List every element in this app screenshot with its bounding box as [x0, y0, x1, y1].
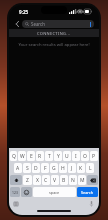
- button[interactable]: B: [60, 175, 68, 185]
- staticText: J: [71, 165, 73, 172]
- staticText: C: [44, 177, 48, 184]
- staticText: S: [26, 165, 29, 172]
- staticText: O: [83, 153, 87, 160]
- staticText: Q: [12, 153, 16, 160]
- button[interactable]: G: [50, 163, 58, 173]
- staticText: F: [44, 165, 47, 172]
- button[interactable]: space: [33, 187, 76, 197]
- button[interactable]: E: [27, 151, 35, 161]
- button[interactable]: Q: [10, 151, 17, 161]
- staticText: M: [80, 177, 85, 184]
- staticText: L: [89, 165, 92, 172]
- staticText: U: [65, 153, 69, 160]
- button[interactable]: Search: [77, 187, 98, 197]
- button[interactable]: J: [68, 163, 76, 173]
- staticText: W: [20, 153, 25, 160]
- button[interactable]: S: [23, 163, 31, 173]
- button[interactable]: Change keyboard language: [12, 200, 19, 207]
- staticText: I: [75, 153, 77, 160]
- staticText: Y: [57, 153, 60, 160]
- staticText: H: [61, 165, 65, 172]
- button[interactable]: Shift: [10, 175, 22, 185]
- staticText: Search: [81, 190, 94, 195]
- staticText: B: [62, 177, 66, 184]
- staticText: CONNECTING...: [37, 31, 71, 36]
- button[interactable]: Back: [12, 19, 22, 29]
- staticText: Search: [31, 21, 45, 27]
- button[interactable]: K: [77, 163, 85, 173]
- button[interactable]: T: [45, 151, 53, 161]
- button[interactable]: N: [69, 175, 77, 185]
- staticText: A: [16, 165, 20, 172]
- button[interactable]: L: [86, 163, 94, 173]
- button[interactable]: 123: [10, 187, 20, 197]
- button[interactable]: D: [32, 163, 40, 173]
- staticText: R: [38, 153, 42, 160]
- button[interactable]: Backspace: [87, 175, 98, 185]
- staticText: Your search results will appear here!: [9, 42, 99, 48]
- button[interactable]: V: [51, 175, 59, 185]
- button[interactable]: H: [59, 163, 67, 173]
- button[interactable]: Dictate: [88, 200, 95, 207]
- button[interactable]: Emoji: [21, 187, 32, 197]
- button[interactable]: Z: [23, 175, 32, 185]
- staticText: 9:25: [19, 9, 29, 15]
- button[interactable]: A: [14, 163, 22, 173]
- button[interactable]: U: [63, 151, 71, 161]
- button[interactable]: R: [36, 151, 44, 161]
- staticText: T: [48, 153, 51, 160]
- staticText: V: [53, 177, 57, 184]
- staticText: P: [92, 153, 96, 160]
- button[interactable]: I: [72, 151, 80, 161]
- button[interactable]: M: [78, 175, 86, 185]
- staticText: space: [49, 190, 60, 195]
- staticText: K: [79, 165, 83, 172]
- button[interactable]: C: [42, 175, 50, 185]
- staticText: E: [30, 153, 33, 160]
- button[interactable]: Y: [54, 151, 62, 161]
- button[interactable]: W: [18, 151, 26, 161]
- button[interactable]: Search: [22, 20, 94, 28]
- staticText: 123: [12, 190, 18, 195]
- button[interactable]: F: [41, 163, 49, 173]
- staticText: D: [34, 165, 38, 172]
- button[interactable]: X: [33, 175, 41, 185]
- staticText: Z: [26, 177, 29, 184]
- staticText: N: [71, 177, 75, 184]
- staticText: G: [52, 165, 56, 172]
- button[interactable]: O: [81, 151, 89, 161]
- button[interactable]: P: [90, 151, 98, 161]
- staticText: X: [36, 177, 39, 184]
